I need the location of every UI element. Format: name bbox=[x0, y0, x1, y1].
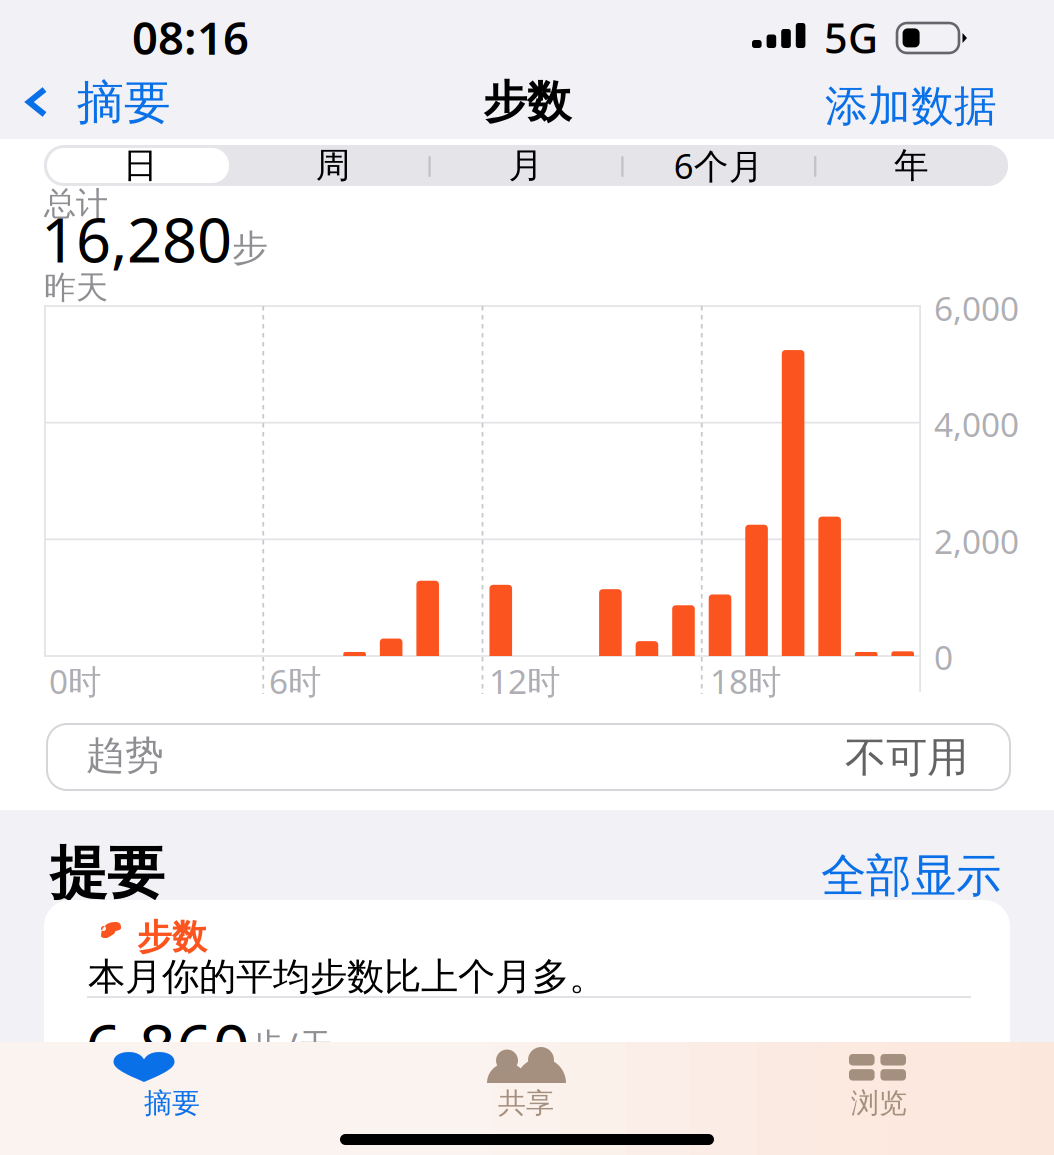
staticText: 摘要 bbox=[144, 1086, 200, 1120]
staticText: 步数 bbox=[137, 916, 207, 959]
staticText: 18时 bbox=[710, 659, 781, 703]
staticText: 步数 bbox=[483, 75, 571, 129]
button[interactable]: 6个月 bbox=[623, 145, 815, 186]
staticText: 月 bbox=[508, 144, 543, 187]
staticText: 昨天 bbox=[44, 268, 108, 307]
staticText: 步/天 bbox=[250, 1022, 333, 1068]
staticText: 总计 bbox=[44, 184, 108, 223]
staticText: 6个月 bbox=[674, 142, 764, 188]
staticText: 年 bbox=[894, 144, 929, 187]
button[interactable]: 共享 bbox=[351, 1042, 703, 1130]
staticText: 6,860 bbox=[85, 1004, 250, 1089]
staticText: 全部显示 bbox=[821, 848, 1001, 904]
staticText: 6时 bbox=[269, 659, 321, 703]
button[interactable]: 步数 bbox=[44, 900, 1010, 1155]
button[interactable]: 浏览 bbox=[703, 1042, 1054, 1130]
staticText: 6,000 bbox=[934, 286, 1019, 330]
staticText: 2,000 bbox=[934, 519, 1019, 563]
staticText: 08:16 bbox=[132, 7, 249, 67]
button[interactable]: 月 bbox=[430, 145, 622, 186]
button[interactable]: 趋势 bbox=[47, 724, 1010, 790]
staticText: 摘要 bbox=[77, 74, 171, 131]
button[interactable]: 添加数据 bbox=[816, 72, 1040, 140]
button[interactable]: 周 bbox=[237, 145, 429, 186]
staticText: 共享 bbox=[498, 1086, 554, 1120]
staticText: 5G bbox=[824, 10, 878, 65]
staticText: 周 bbox=[316, 144, 351, 187]
staticText: 0时 bbox=[49, 659, 101, 703]
button[interactable]: 日 bbox=[44, 145, 236, 186]
button[interactable]: 摘要 bbox=[0, 1042, 351, 1130]
staticText: 提要 bbox=[50, 838, 164, 908]
staticText: 本月你的平均步数比上个月多。 bbox=[88, 954, 606, 1000]
button[interactable]: 全部显示 bbox=[810, 838, 1010, 896]
staticText: 4,000 bbox=[934, 402, 1019, 446]
staticText: 16,280 bbox=[41, 198, 232, 279]
staticText: 不可用 bbox=[845, 732, 968, 783]
button[interactable]: 摘要 bbox=[3, 72, 199, 138]
staticText: 0 bbox=[934, 635, 953, 679]
staticText: 步 bbox=[232, 226, 268, 270]
button[interactable]: 年 bbox=[816, 145, 1008, 186]
staticText: 添加数据 bbox=[825, 80, 997, 132]
staticText: 趋势 bbox=[86, 732, 164, 779]
staticText: 浏览 bbox=[851, 1086, 907, 1120]
staticText: 日 bbox=[123, 144, 158, 187]
staticText: 12时 bbox=[489, 659, 560, 703]
